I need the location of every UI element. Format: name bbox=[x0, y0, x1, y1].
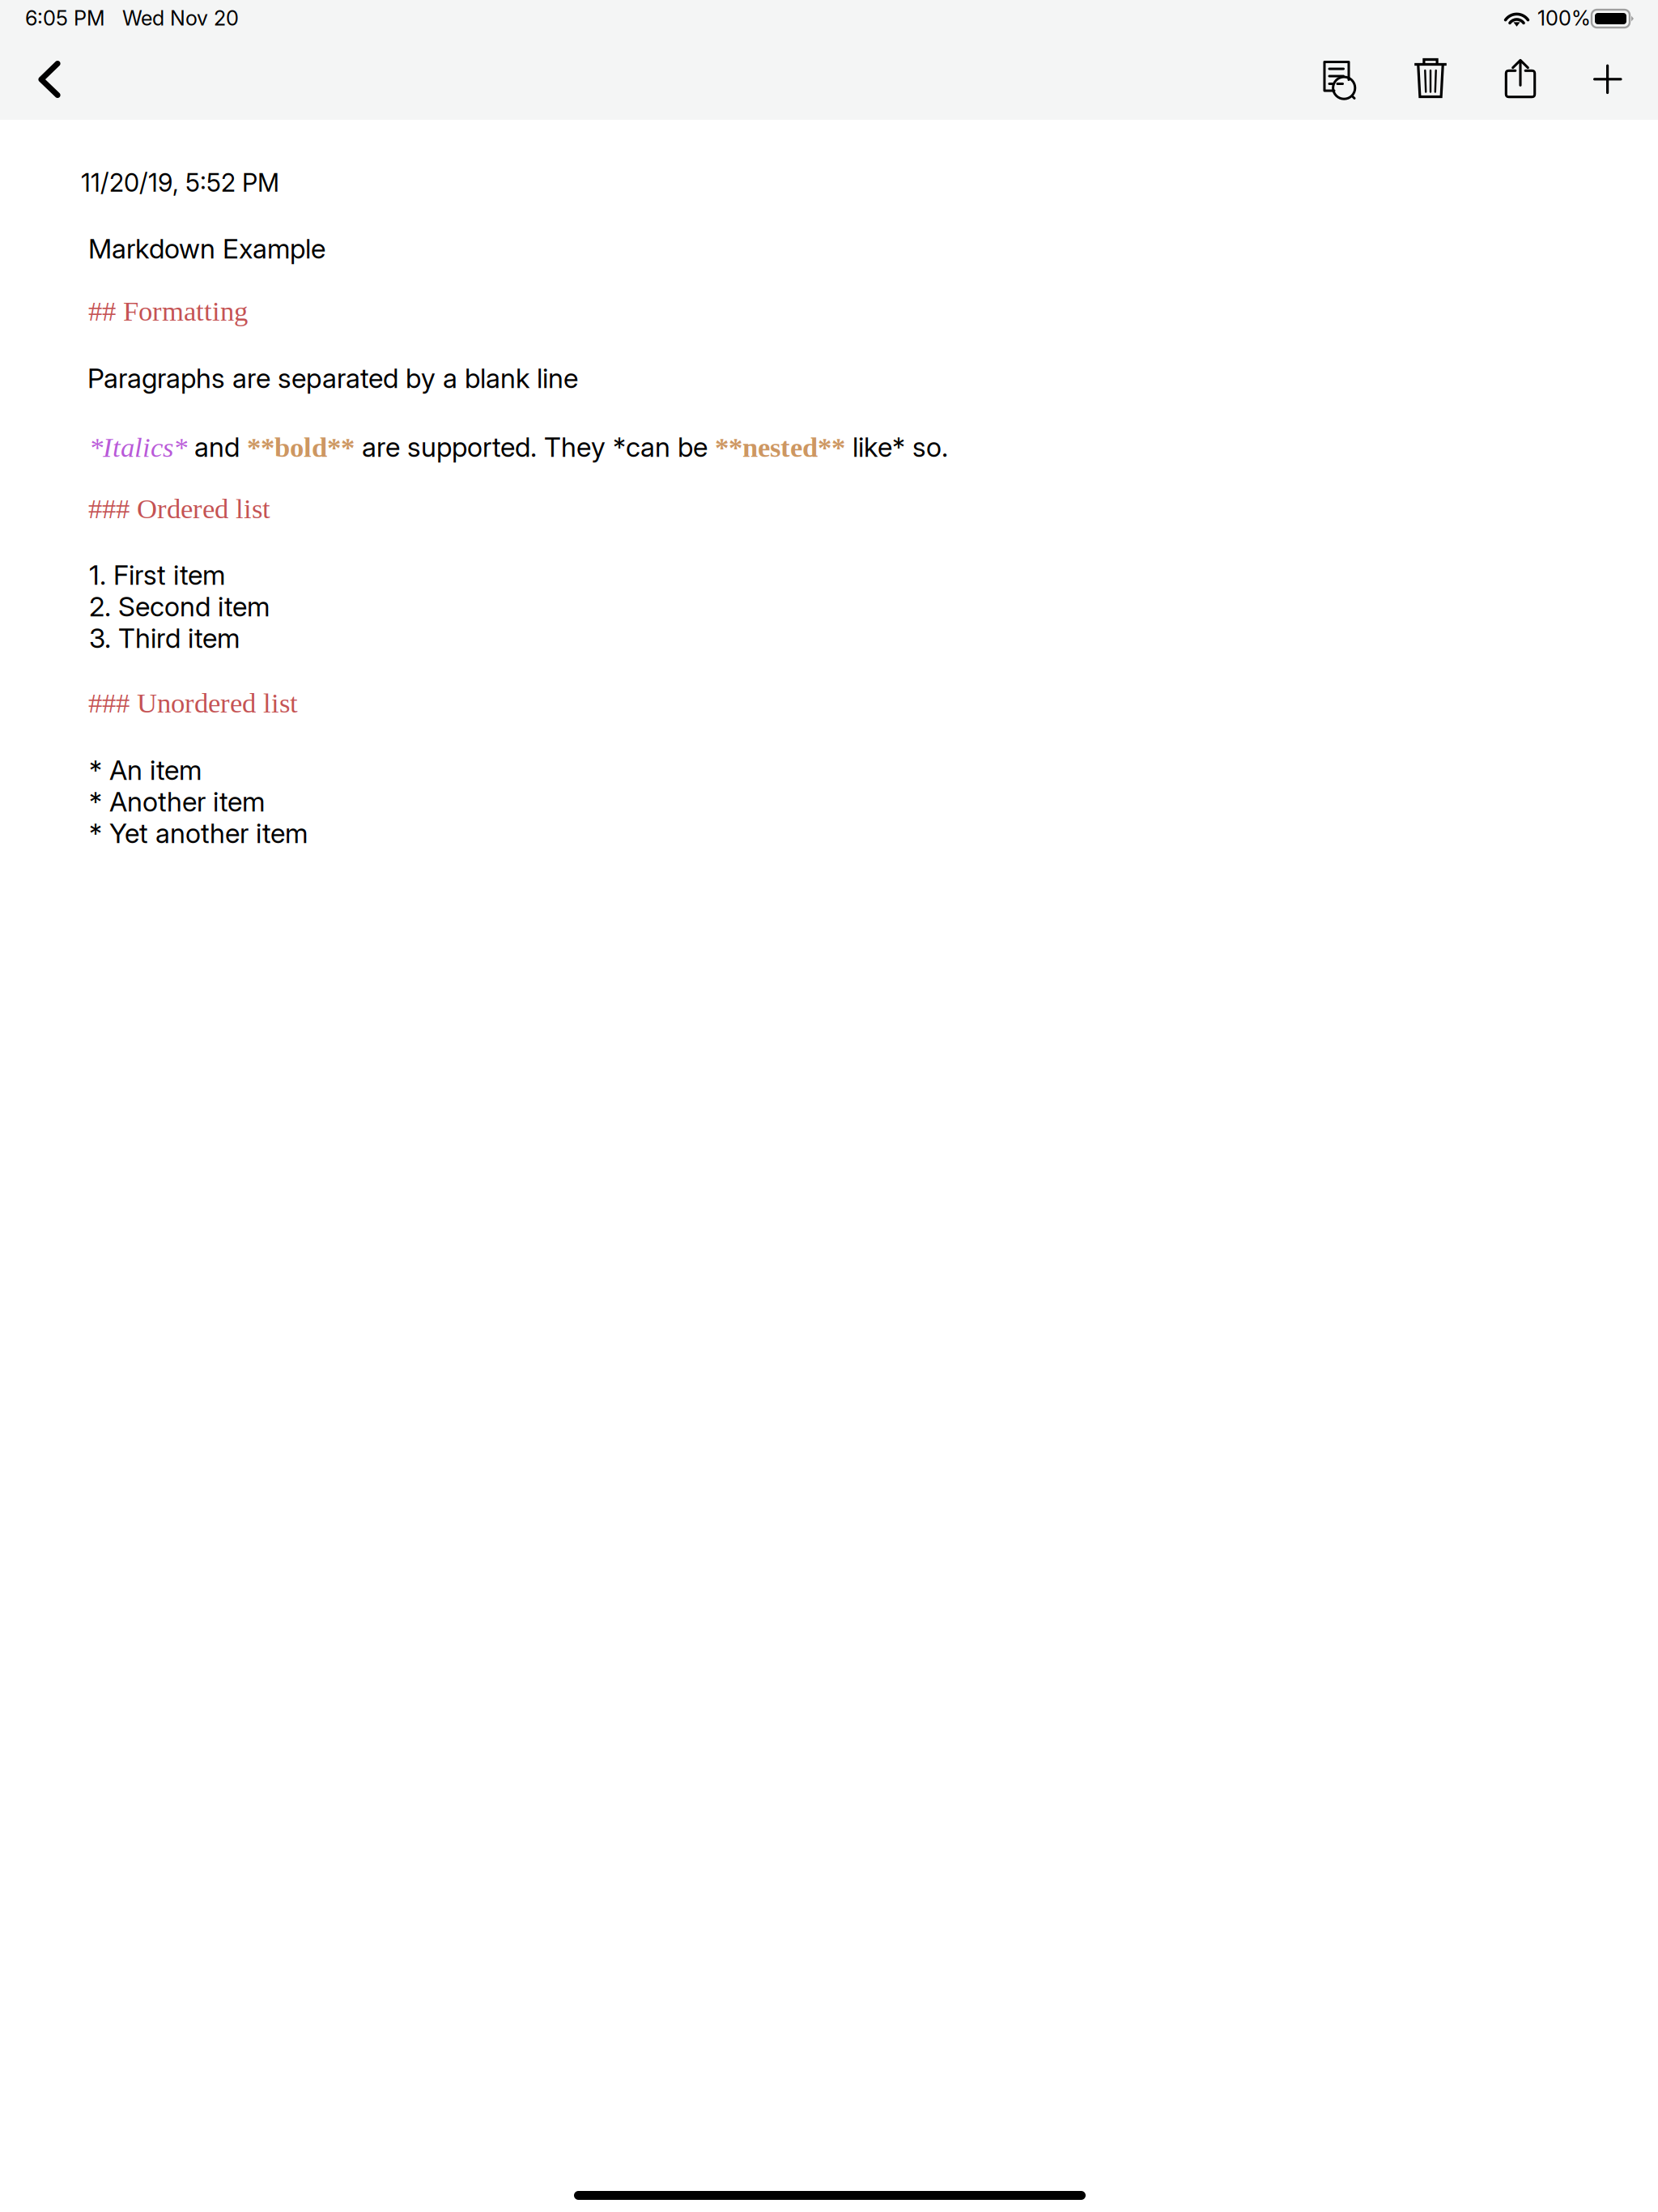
staticText: 3. Third item bbox=[89, 622, 240, 654]
staticText: ## Formatting bbox=[88, 296, 248, 327]
button[interactable]: New note bbox=[1572, 44, 1643, 115]
staticText: 100% bbox=[1537, 6, 1591, 31]
button[interactable]: Find in note bbox=[1303, 45, 1375, 117]
staticText: ### Ordered list bbox=[88, 493, 270, 524]
button[interactable]: Back bbox=[14, 44, 85, 115]
staticText: **bold** bbox=[247, 432, 355, 463]
staticText: * Another item bbox=[89, 785, 265, 818]
staticText: Wed Nov 20 bbox=[122, 6, 239, 31]
staticText: 11/20/19, 5:52 PM bbox=[81, 168, 279, 198]
staticText: * An item bbox=[89, 754, 202, 786]
staticText: and bbox=[187, 431, 247, 463]
staticText: **nested** bbox=[715, 432, 845, 463]
staticText: Paragraphs are separated by a blank line bbox=[87, 362, 578, 395]
staticText: Markdown Example bbox=[88, 232, 325, 265]
staticText: * Yet another item bbox=[89, 817, 308, 850]
staticText: like* so. bbox=[845, 431, 948, 463]
staticText: are supported. They *can be bbox=[355, 431, 715, 463]
staticText: 6:05 PM bbox=[25, 6, 105, 31]
staticText: ### Unordered list bbox=[88, 687, 298, 718]
button[interactable]: Delete note bbox=[1395, 41, 1466, 113]
staticText: *Italics* bbox=[89, 432, 187, 463]
staticText: 2. Second item bbox=[89, 590, 270, 623]
button[interactable]: Share bbox=[1485, 43, 1556, 114]
staticText: 1. First item bbox=[89, 559, 225, 591]
